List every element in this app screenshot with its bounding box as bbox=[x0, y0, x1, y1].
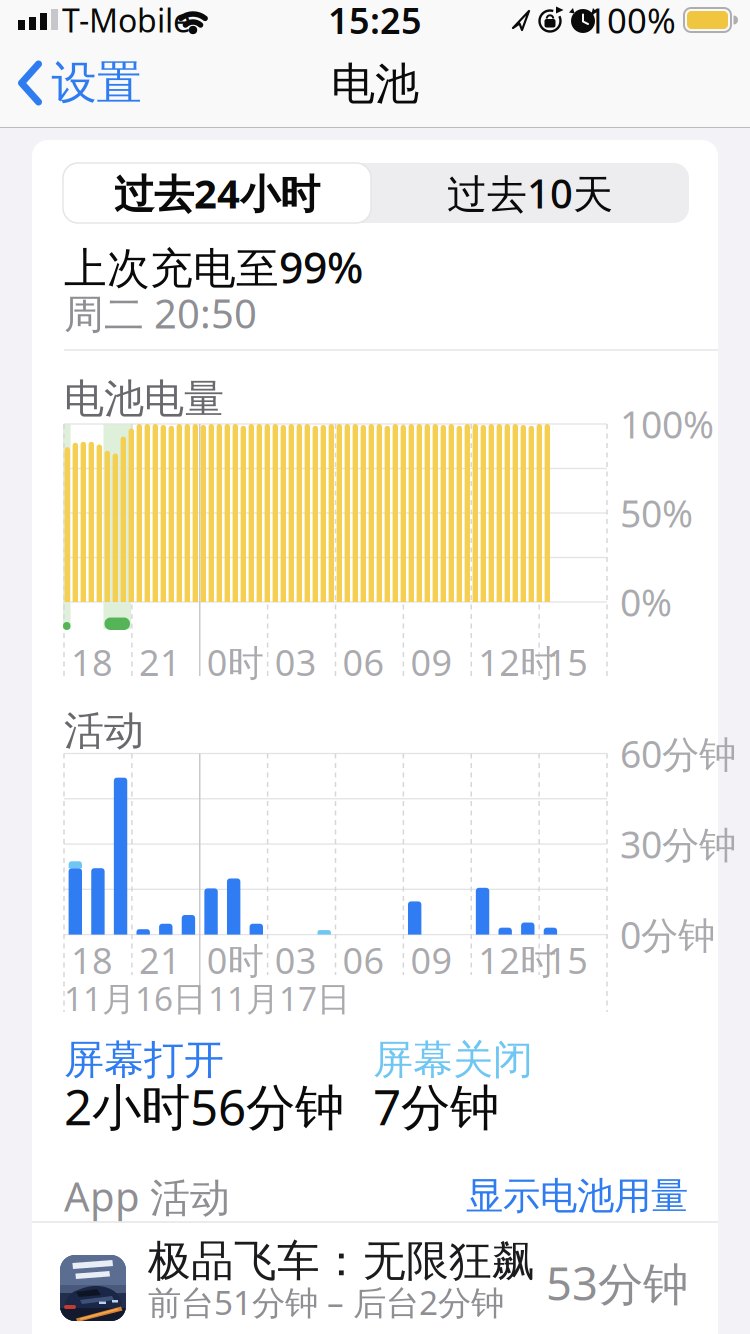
button[interactable]: 过去10天 bbox=[375, 163, 685, 223]
staticText: 15 bbox=[546, 638, 588, 686]
staticText: 12时 bbox=[478, 638, 556, 686]
staticText: 过去24小时 bbox=[114, 166, 320, 219]
staticText: 屏幕打开 bbox=[64, 1035, 224, 1084]
staticText: 15:25 bbox=[328, 0, 422, 44]
staticText: 显示电池用量 bbox=[466, 1173, 688, 1219]
staticText: 03 bbox=[275, 638, 317, 686]
staticText: 100% bbox=[620, 399, 714, 449]
staticText: 电池电量 bbox=[64, 374, 224, 423]
staticText: 53分钟 bbox=[546, 1253, 688, 1313]
staticText: 过去10天 bbox=[447, 166, 613, 219]
staticText: 06 bbox=[342, 638, 384, 686]
button[interactable]: 返回设置 bbox=[18, 55, 141, 111]
staticText: 0分钟 bbox=[620, 910, 715, 959]
staticText: 18 bbox=[71, 638, 113, 686]
staticText: 09 bbox=[410, 638, 452, 686]
staticText: T-Mobile bbox=[62, 0, 191, 41]
staticText: 11月16日 bbox=[64, 976, 206, 1020]
staticText: 前台51分钟 – 后台2分钟 bbox=[148, 1280, 504, 1324]
staticText: 60分钟 bbox=[620, 729, 736, 778]
staticText: 09 bbox=[410, 936, 452, 984]
staticText: 极品飞车：无限狂飙 bbox=[148, 1235, 535, 1287]
staticText: 21 bbox=[139, 936, 181, 984]
staticText: 0% bbox=[620, 577, 672, 627]
staticText: 18 bbox=[71, 936, 113, 984]
staticText: 屏幕关闭 bbox=[373, 1035, 533, 1084]
staticText: 21 bbox=[139, 638, 181, 686]
staticText: 周二 20:50 bbox=[64, 286, 257, 339]
staticText: 2小时56分钟 bbox=[64, 1073, 344, 1139]
staticText: 11月17日 bbox=[208, 976, 350, 1020]
button[interactable]: 极品飞车：无限狂飙 bbox=[32, 1222, 718, 1334]
staticText: 7分钟 bbox=[373, 1073, 499, 1139]
staticText: 30分钟 bbox=[620, 819, 736, 869]
button[interactable]: 过去24小时 bbox=[63, 163, 371, 223]
staticText: 12时 bbox=[478, 936, 556, 984]
button[interactable]: 显示电池用量 bbox=[388, 1173, 688, 1219]
staticText: 活动 bbox=[64, 706, 144, 755]
staticText: 06 bbox=[342, 936, 384, 984]
staticText: 03 bbox=[275, 936, 317, 984]
staticText: 电池 bbox=[331, 57, 419, 111]
staticText: 0时 bbox=[207, 936, 264, 984]
staticText: 15 bbox=[546, 936, 588, 984]
staticText: App 活动 bbox=[64, 1169, 230, 1223]
staticText: 100% bbox=[587, 0, 676, 43]
staticText: 上次充电至99% bbox=[64, 239, 363, 295]
staticText: 设置 bbox=[51, 55, 141, 111]
staticText: 50% bbox=[620, 488, 693, 538]
staticText: 0时 bbox=[207, 638, 264, 686]
